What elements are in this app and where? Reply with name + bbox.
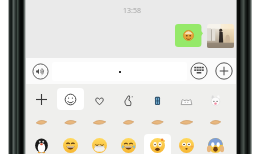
button[interactable]: Emoji 3 [115,105,142,128]
button[interactable]: Stickers [144,88,171,110]
button[interactable]: Gestures [115,88,142,110]
button[interactable]: Emoji 6 [202,105,229,128]
button[interactable]: Emoji 12 [173,134,200,154]
button[interactable] [52,62,187,81]
button[interactable]: Emoji 13 [202,134,229,154]
button[interactable]: Emoji 8 [57,134,84,154]
staticText: 13:58 [123,6,141,16]
button[interactable]: Add [28,88,55,110]
button[interactable]: Cat pack [173,88,200,110]
button[interactable]: Emoji 11 [144,134,171,154]
button[interactable]: Emoji 7 [28,134,55,154]
button[interactable]: Emoji 9 [86,134,113,154]
button[interactable]: Emoji 1 [57,105,84,128]
button[interactable]: Emoji 5 [173,105,200,128]
button[interactable] [175,24,203,47]
button[interactable]: Emoji 10 [115,134,142,154]
button[interactable]: Emoji 2 [86,105,113,128]
button[interactable]: Voice message [32,63,49,80]
button[interactable]: Photo [207,24,234,48]
button[interactable]: Emoji 4 [144,105,171,128]
button[interactable]: Smileys [57,88,84,110]
button[interactable]: More [215,62,233,80]
button[interactable]: Keyboard [190,62,208,80]
button[interactable]: Favorites [86,88,113,110]
button[interactable]: Bunny pack [202,88,229,110]
button[interactable]: Emoji 0 [28,105,55,128]
